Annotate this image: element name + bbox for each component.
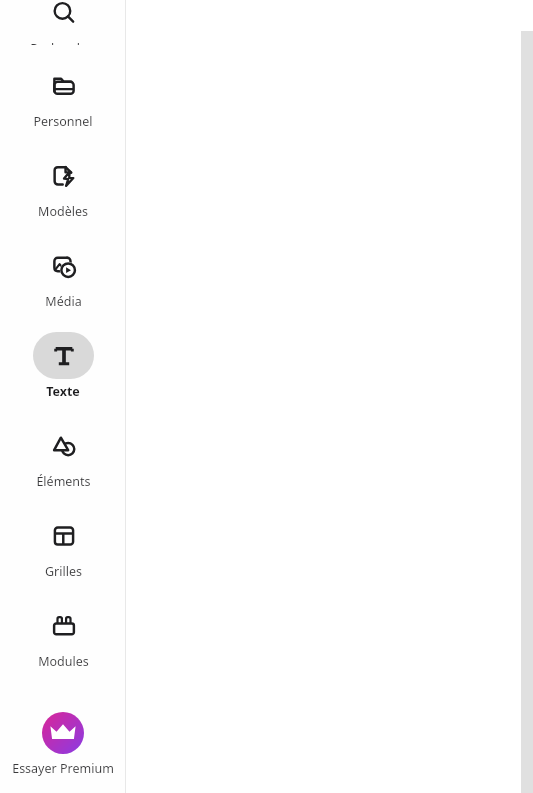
staticText: Grilles: [45, 563, 82, 580]
button[interactable]: Texte: [0, 329, 126, 419]
staticText: Personnel: [33, 113, 93, 130]
other: Essayer Premium: [42, 712, 84, 754]
button[interactable]: Éléments: [0, 419, 126, 509]
button[interactable]: Modules: [0, 599, 126, 689]
button[interactable]: Grilles: [0, 509, 126, 599]
button[interactable]: Essayer Premium: [0, 712, 126, 793]
staticText: Essayer Premium: [12, 760, 114, 777]
staticText: Texte: [46, 383, 80, 400]
staticText: Modules: [38, 653, 89, 670]
button[interactable]: Personnel: [0, 59, 126, 149]
staticText: Éléments: [36, 473, 91, 490]
button[interactable]: Média: [0, 239, 126, 329]
button[interactable]: Modèles: [0, 149, 126, 239]
staticText: Média: [45, 293, 82, 310]
staticText: Rechercher: [30, 40, 97, 45]
staticText: Modèles: [38, 203, 88, 220]
button[interactable]: Rechercher: [0, 0, 126, 45]
